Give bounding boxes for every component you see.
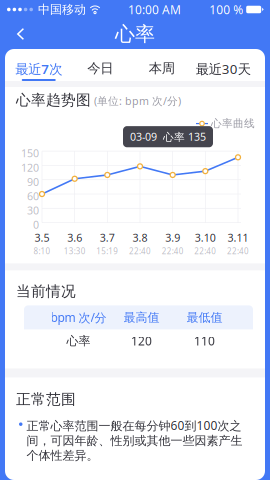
staticText: 最低值 bbox=[186, 310, 222, 325]
staticText: 今日 bbox=[87, 60, 113, 76]
staticText: 心率趋势图 bbox=[16, 91, 91, 109]
staticText: 22:40 bbox=[129, 246, 151, 256]
staticText: 心率曲线 bbox=[211, 117, 255, 130]
staticText: 15:19 bbox=[96, 246, 118, 256]
staticText: 本周 bbox=[149, 60, 175, 76]
staticText: 60 bbox=[27, 189, 39, 203]
staticText: 3.9 bbox=[165, 231, 180, 245]
staticText: 90 bbox=[27, 175, 39, 189]
button[interactable]: 本周 bbox=[131, 49, 192, 81]
staticText: 100 % bbox=[209, 1, 243, 17]
staticText: 3.6 bbox=[67, 231, 82, 245]
staticText: 120 bbox=[21, 160, 39, 175]
staticText: 13:30 bbox=[64, 246, 86, 256]
button[interactable]: Back bbox=[0, 19, 35, 48]
staticText: 心率 bbox=[66, 334, 90, 348]
staticText: 最近30天 bbox=[196, 60, 251, 78]
staticText: 10:00 AM bbox=[128, 1, 181, 17]
staticText: 3.8 bbox=[132, 231, 147, 245]
staticText: 正常范围 bbox=[16, 390, 76, 408]
staticText: 110 bbox=[194, 333, 215, 349]
staticText: 8:10 bbox=[33, 246, 50, 256]
staticText: 22:40 bbox=[194, 246, 216, 256]
staticText: 22:40 bbox=[162, 246, 184, 256]
staticText: 3.11 bbox=[227, 231, 248, 245]
button[interactable]: 最近30天 bbox=[192, 49, 254, 81]
staticText: 0 bbox=[33, 218, 39, 232]
staticText: 120 bbox=[131, 333, 152, 349]
staticText: 最近7次 bbox=[15, 60, 62, 78]
staticText: 03-09 bbox=[130, 130, 157, 144]
staticText: 最高值 bbox=[123, 310, 159, 325]
staticText: 150 bbox=[21, 146, 39, 160]
staticText: (单位: bpm 次/分) bbox=[94, 94, 181, 108]
staticText: 当前情况 bbox=[16, 282, 76, 300]
staticText: 3.7 bbox=[100, 231, 115, 245]
button[interactable]: 今日 bbox=[69, 49, 131, 81]
staticText: 心率 bbox=[115, 22, 155, 46]
staticText: 30 bbox=[27, 203, 39, 217]
staticText: 3.5 bbox=[34, 231, 49, 245]
staticText: 中国移动 bbox=[38, 2, 86, 17]
staticText: bpm 次/分 bbox=[50, 309, 106, 325]
button[interactable]: 最近7次 bbox=[8, 49, 69, 81]
staticText: 正常心率范围一般在每分钟60到100次之间，可因年龄、性别或其他一些因素产生个体… bbox=[26, 417, 242, 463]
staticText: 22:40 bbox=[227, 246, 249, 256]
staticText: 3.10 bbox=[195, 231, 216, 245]
staticText: 心率 135 bbox=[163, 130, 206, 144]
